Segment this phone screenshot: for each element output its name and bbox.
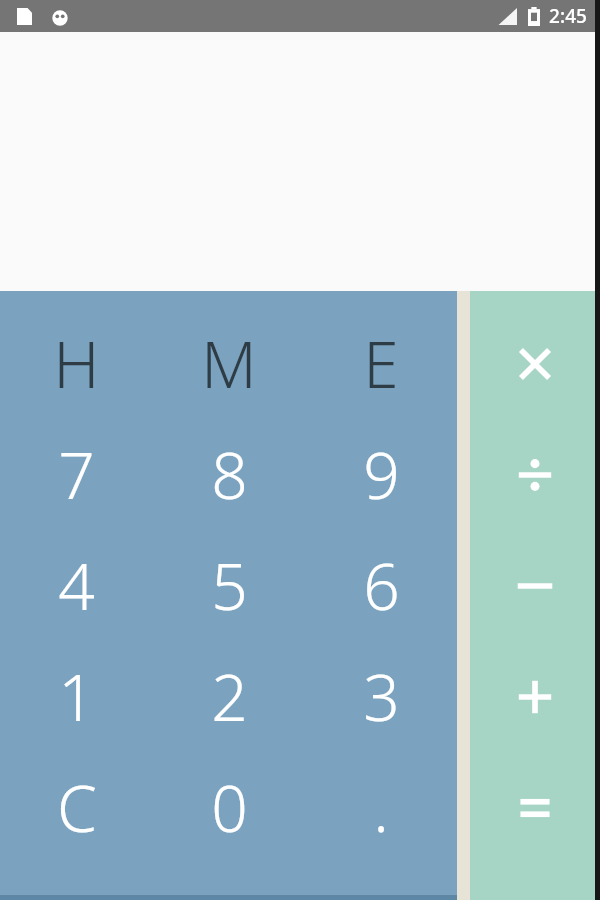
staticText: 5 — [211, 542, 248, 629]
button[interactable]: Multiply — [470, 308, 600, 419]
button[interactable]: 7 — [0, 419, 153, 530]
button[interactable]: 1 — [0, 641, 153, 752]
button[interactable]: 6 — [305, 530, 457, 641]
staticText: 9 — [363, 431, 400, 518]
button[interactable]: Equals — [470, 752, 600, 863]
staticText: . — [373, 764, 389, 851]
button[interactable]: E — [305, 308, 457, 419]
staticText: C — [57, 764, 97, 851]
button[interactable]: C — [0, 752, 153, 863]
staticText: M — [201, 320, 257, 407]
button[interactable]: H — [0, 308, 153, 419]
staticText: 1 — [58, 653, 95, 740]
staticText: 4 — [58, 542, 95, 629]
staticText: 0 — [211, 764, 248, 851]
staticText: E — [363, 320, 399, 407]
button[interactable]: 8 — [153, 419, 305, 530]
button[interactable]: 4 — [0, 530, 153, 641]
staticText: 2 — [211, 653, 248, 740]
button[interactable]: 2 — [153, 641, 305, 752]
button[interactable]: 5 — [153, 530, 305, 641]
button[interactable]: 0 — [153, 752, 305, 863]
button[interactable]: 3 — [305, 641, 457, 752]
staticText: 3 — [363, 653, 400, 740]
button[interactable]: . — [305, 752, 457, 863]
button[interactable]: 9 — [305, 419, 457, 530]
button[interactable]: Plus — [470, 641, 600, 752]
staticText: 8 — [211, 431, 248, 518]
staticText: H — [53, 320, 100, 407]
staticText: 7 — [58, 431, 95, 518]
staticText: 6 — [363, 542, 400, 629]
button[interactable]: Minus — [470, 530, 600, 641]
button[interactable]: Divide — [470, 419, 600, 530]
button[interactable]: M — [153, 308, 305, 419]
staticText: 2:45 — [549, 3, 587, 29]
